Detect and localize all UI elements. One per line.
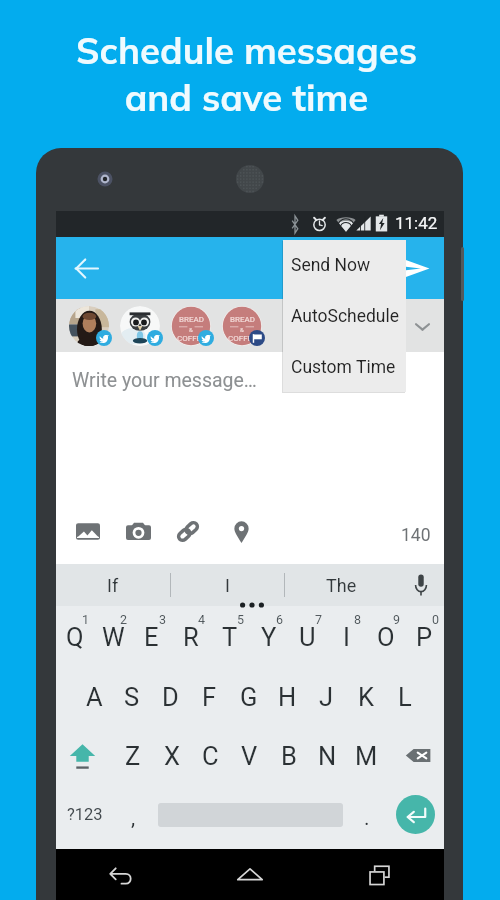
button[interactable]: Location — [226, 513, 257, 550]
staticText: N — [318, 741, 337, 771]
staticText: K — [358, 682, 374, 712]
staticText: 140 — [401, 525, 431, 546]
button[interactable]: S — [113, 667, 151, 727]
staticText: S — [124, 682, 140, 712]
staticText: Schedule messages and save time — [76, 27, 417, 120]
staticText: 0 — [432, 612, 440, 627]
staticText: P — [416, 622, 433, 652]
staticText: J — [319, 682, 334, 712]
button[interactable]: B — [269, 726, 308, 785]
button[interactable]: Z — [114, 726, 152, 785]
button[interactable]: Symbols — [60, 788, 110, 841]
button[interactable]: Space — [154, 792, 347, 837]
button[interactable]: Custom Time — [283, 342, 406, 392]
staticText: 6 — [276, 612, 284, 627]
button[interactable]: J — [307, 667, 346, 727]
button[interactable]: Account — [120, 306, 160, 346]
staticText: Custom Time — [291, 357, 396, 378]
button[interactable]: F — [190, 667, 229, 727]
staticText: COFFEE — [177, 334, 206, 343]
button[interactable]: H — [268, 667, 307, 727]
staticText: C — [202, 741, 219, 771]
staticText: & — [240, 326, 244, 333]
staticText: E — [144, 622, 159, 652]
button[interactable]: Add image — [69, 515, 107, 548]
button[interactable]: T — [210, 603, 249, 664]
button[interactable]: D — [151, 667, 190, 727]
staticText: G — [240, 682, 258, 712]
button[interactable]: P — [405, 603, 444, 664]
staticText: COFFEE — [228, 334, 257, 343]
button[interactable]: V — [230, 726, 269, 785]
button[interactable]: Backspace — [394, 729, 442, 782]
button[interactable]: N — [308, 726, 347, 785]
staticText: 11:42 — [395, 213, 438, 233]
staticText: 9 — [393, 612, 401, 627]
button[interactable]: Back — [98, 852, 144, 898]
button[interactable]: Account — [171, 306, 211, 346]
button[interactable]: Expand recipients — [404, 308, 440, 344]
staticText: H — [278, 682, 297, 712]
staticText: T — [222, 622, 238, 652]
button[interactable]: O — [366, 603, 405, 664]
button[interactable]: Account — [69, 306, 109, 346]
button[interactable]: K — [346, 667, 385, 727]
button[interactable]: M — [347, 726, 386, 785]
button[interactable]: A — [75, 667, 113, 727]
staticText: & — [189, 326, 193, 333]
staticText: , — [131, 806, 136, 831]
button[interactable]: Back — [62, 244, 110, 292]
staticText: 5 — [237, 612, 245, 627]
button[interactable]: Account — [222, 306, 262, 346]
button[interactable]: Period — [350, 788, 384, 841]
staticText: D — [162, 682, 179, 712]
staticText: B — [281, 741, 297, 771]
button[interactable]: Voice input — [398, 564, 444, 606]
staticText: Write your message… — [72, 369, 257, 392]
button[interactable]: U — [288, 603, 327, 664]
button[interactable]: R — [171, 603, 210, 664]
staticText: 1 — [82, 612, 90, 627]
button[interactable]: Send — [392, 244, 440, 292]
button[interactable]: X — [152, 726, 191, 785]
button[interactable]: AutoSchedule — [283, 291, 406, 342]
staticText: W — [102, 622, 125, 652]
staticText: U — [299, 622, 316, 652]
button[interactable]: C — [191, 726, 230, 785]
button[interactable]: G — [229, 667, 268, 727]
button[interactable]: Home — [227, 852, 273, 898]
staticText: V — [241, 741, 258, 771]
button[interactable]: Shift — [58, 729, 107, 782]
button[interactable]: Camera — [119, 514, 158, 549]
button[interactable]: Comma — [116, 788, 151, 841]
staticText: O — [377, 622, 395, 652]
button[interactable]: The — [285, 564, 398, 606]
button[interactable]: I — [171, 564, 284, 606]
button[interactable]: Q — [56, 603, 94, 664]
staticText: Q — [66, 622, 84, 652]
staticText: 4 — [198, 612, 206, 627]
button[interactable]: If — [56, 564, 170, 606]
staticText: 2 — [120, 612, 128, 627]
button[interactable]: Send Now — [283, 240, 406, 291]
button[interactable]: Y — [249, 603, 288, 664]
button[interactable]: Enter — [390, 790, 441, 839]
staticText: Y — [261, 622, 277, 652]
button[interactable]: L — [385, 667, 424, 727]
staticText: 3 — [159, 612, 167, 627]
staticText: Z — [125, 741, 141, 771]
staticText: I — [225, 575, 230, 596]
button[interactable]: I — [327, 603, 366, 664]
staticText: The — [326, 575, 357, 596]
staticText: I — [343, 622, 350, 652]
button[interactable]: W — [94, 603, 132, 664]
button[interactable]: Link — [169, 513, 207, 550]
staticText: . — [364, 806, 370, 831]
staticText: L — [398, 682, 412, 712]
staticText: R — [183, 622, 199, 652]
staticText: A — [86, 682, 103, 712]
staticText: 7 — [315, 612, 323, 627]
button[interactable]: Recent apps — [356, 852, 402, 898]
staticText: BREAD — [179, 315, 204, 324]
button[interactable]: E — [132, 603, 171, 664]
